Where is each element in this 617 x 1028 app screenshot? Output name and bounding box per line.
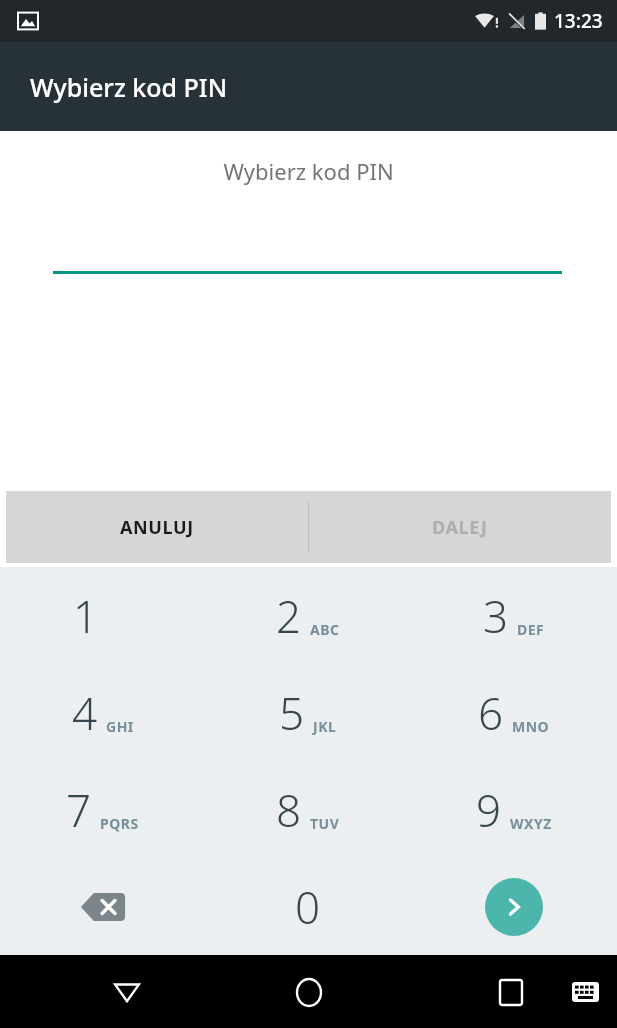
staticText: 8	[276, 780, 302, 840]
button[interactable]: Home	[285, 968, 333, 1016]
staticText: JKL	[313, 717, 337, 736]
staticText: DALEJ	[432, 515, 488, 540]
staticText: 9	[476, 780, 502, 840]
button[interactable]: 6	[411, 664, 617, 761]
button[interactable]: 9	[411, 761, 617, 858]
staticText: 6	[478, 683, 504, 743]
staticText: Wybierz kod PIN	[30, 70, 228, 104]
button[interactable]: Backspace	[0, 858, 205, 955]
staticText: 13:23	[554, 8, 603, 34]
staticText: 4	[72, 683, 98, 743]
button[interactable]: 8	[205, 761, 411, 858]
staticText: 1	[73, 586, 99, 646]
button[interactable]: DALEJ	[309, 491, 611, 563]
button[interactable]: 0	[205, 858, 411, 955]
button[interactable]: 4	[0, 664, 205, 761]
button[interactable]: Next	[411, 858, 617, 955]
staticText: WXYZ	[510, 814, 552, 833]
staticText: 0	[295, 877, 321, 937]
staticText: 2	[276, 586, 302, 646]
staticText: GHI	[106, 717, 134, 736]
button[interactable]: 2	[205, 567, 411, 664]
button[interactable]: 1	[0, 567, 205, 664]
staticText: MNO	[512, 717, 550, 736]
staticText: 7	[66, 780, 92, 840]
staticText: 3	[483, 586, 509, 646]
staticText: ANULUJ	[120, 515, 194, 540]
button[interactable]: 3	[411, 567, 617, 664]
staticText: ABC	[310, 620, 340, 639]
staticText: 5	[279, 683, 305, 743]
button[interactable]: 5	[205, 664, 411, 761]
button[interactable]: Switch keyboard	[563, 970, 607, 1014]
staticText: PQRS	[100, 814, 139, 833]
button[interactable]: ANULUJ	[6, 491, 308, 563]
staticText: DEF	[517, 620, 545, 639]
button[interactable]: Recent apps	[487, 968, 535, 1016]
button[interactable]: Back	[103, 968, 151, 1016]
button[interactable]: 7	[0, 761, 205, 858]
staticText: TUV	[310, 814, 340, 833]
staticText: Wybierz kod PIN	[0, 156, 617, 186]
